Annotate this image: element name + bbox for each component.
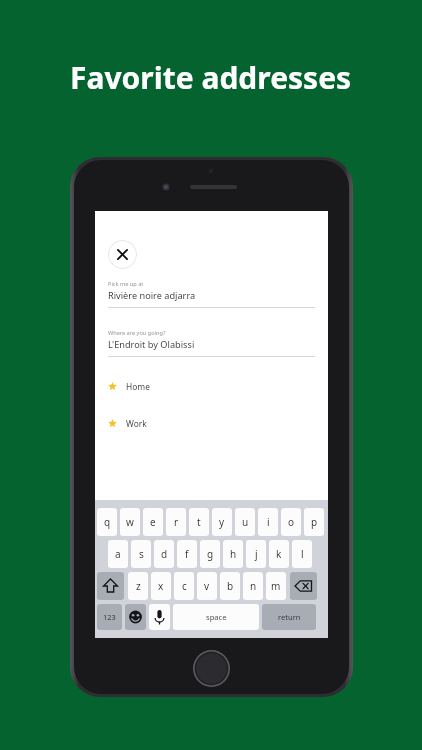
staticText: a (115, 547, 121, 561)
button[interactable]: e (143, 508, 163, 536)
button[interactable]: a (108, 540, 128, 568)
staticText: Rivière noire adjarra (108, 289, 196, 302)
staticText: 123 (103, 612, 116, 622)
button[interactable]: Backspace (290, 572, 317, 600)
staticText: d (161, 547, 168, 561)
button[interactable]: p (304, 508, 324, 536)
button[interactable]: Close (108, 240, 137, 269)
button[interactable]: w (120, 508, 140, 536)
button[interactable]: m (266, 572, 286, 600)
button[interactable]: h (223, 540, 243, 568)
staticText: Where are you going? (108, 329, 166, 337)
button[interactable]: Pick me up at (108, 280, 315, 324)
staticText: return (278, 612, 301, 622)
staticText: r (174, 515, 179, 529)
button[interactable]: d (154, 540, 174, 568)
button[interactable]: j (246, 540, 266, 568)
staticText: b (227, 579, 234, 593)
staticText: y (219, 515, 225, 529)
button[interactable]: i (258, 508, 278, 536)
staticText: o (288, 515, 295, 529)
button[interactable]: return (262, 604, 316, 630)
staticText: g (207, 547, 214, 561)
staticText: q (104, 515, 111, 529)
staticText: l (301, 547, 304, 561)
staticText: t (197, 515, 201, 529)
staticText: z (136, 579, 141, 593)
button[interactable]: l (292, 540, 312, 568)
staticText: w (126, 515, 134, 529)
staticText: k (276, 547, 282, 561)
button[interactable]: q (97, 508, 117, 536)
staticText: Home (126, 381, 150, 392)
staticText: L'Endroit by Olabissi (108, 338, 195, 351)
staticText: v (204, 579, 210, 593)
button[interactable]: k (269, 540, 289, 568)
button[interactable]: y (212, 508, 232, 536)
button[interactable]: 123 (97, 604, 122, 630)
staticText: Pick me up at (108, 280, 144, 288)
button[interactable]: x (151, 572, 171, 600)
button[interactable]: v (197, 572, 217, 600)
staticText: n (250, 579, 257, 593)
staticText: x (158, 579, 164, 593)
staticText: i (267, 515, 270, 529)
button[interactable]: b (220, 572, 240, 600)
staticText: u (242, 515, 249, 529)
button[interactable]: g (200, 540, 220, 568)
button[interactable]: Dictate (149, 604, 170, 630)
staticText: j (255, 547, 258, 561)
staticText: h (230, 547, 237, 561)
button[interactable]: n (243, 572, 263, 600)
button[interactable]: u (235, 508, 255, 536)
staticText: f (185, 547, 189, 561)
staticText: c (182, 579, 187, 593)
staticText: s (139, 547, 144, 561)
button[interactable]: Home (108, 376, 315, 396)
button[interactable]: o (281, 508, 301, 536)
button[interactable]: space (173, 604, 259, 630)
button[interactable]: Where are you going? (108, 329, 315, 373)
staticText: Favorite addresses (70, 57, 352, 98)
button[interactable]: Work (108, 413, 315, 433)
staticText: Work (126, 418, 147, 429)
staticText: e (150, 515, 156, 529)
button[interactable]: c (174, 572, 194, 600)
button[interactable]: s (131, 540, 151, 568)
staticText: p (311, 515, 318, 529)
button[interactable]: Shift (97, 572, 124, 600)
button[interactable]: f (177, 540, 197, 568)
button[interactable]: t (189, 508, 209, 536)
staticText: space (206, 612, 227, 622)
button[interactable]: r (166, 508, 186, 536)
button[interactable]: z (128, 572, 148, 600)
staticText: m (271, 579, 281, 593)
button[interactable]: Emoji (125, 604, 146, 630)
other: Home button (193, 650, 230, 687)
